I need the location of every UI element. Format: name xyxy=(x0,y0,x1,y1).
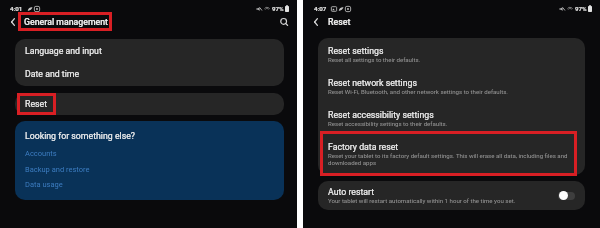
staticText: Reset xyxy=(25,99,48,109)
staticText: Auto restart xyxy=(328,187,375,197)
button[interactable] xyxy=(318,181,585,210)
button[interactable] xyxy=(318,102,585,134)
staticText: Language and input xyxy=(25,46,102,56)
staticText: Reset xyxy=(328,17,351,27)
staticText: Reset your tablet to its factory default… xyxy=(328,152,568,166)
button[interactable] xyxy=(25,165,90,174)
button[interactable] xyxy=(15,62,284,85)
button[interactable] xyxy=(15,93,284,115)
staticText: General management xyxy=(24,17,109,27)
staticText: 4:01 xyxy=(10,5,23,12)
button[interactable] xyxy=(318,70,585,102)
button[interactable]: Navigate up xyxy=(6,15,20,29)
button[interactable]: Navigate up xyxy=(309,15,323,29)
staticText: Accounts xyxy=(25,149,57,158)
staticText: 97% xyxy=(272,5,284,12)
staticText: Reset Wi-Fi, Bluetooth, and other networ… xyxy=(328,88,508,95)
button[interactable] xyxy=(318,38,585,70)
staticText: 4:07 xyxy=(314,5,327,12)
button[interactable] xyxy=(318,135,585,175)
button[interactable] xyxy=(25,181,64,190)
button[interactable] xyxy=(15,39,284,62)
staticText: Your tablet will restart automatically w… xyxy=(328,197,516,204)
staticText: Reset settings xyxy=(328,46,384,56)
staticText: Date and time xyxy=(25,69,80,79)
staticText: Backup and restore xyxy=(25,165,90,174)
staticText: Reset all settings to their defaults. xyxy=(328,56,421,63)
button[interactable]: Auto restart, off xyxy=(558,192,575,200)
staticText: Data usage xyxy=(25,180,63,189)
staticText: Reset accessibility settings xyxy=(328,110,434,120)
button[interactable]: Search xyxy=(278,16,290,28)
button[interactable] xyxy=(25,150,58,159)
staticText: Reset accessibility settings to their de… xyxy=(328,120,448,127)
staticText: 97% xyxy=(575,5,587,12)
staticText: Reset network settings xyxy=(328,78,417,88)
staticText: Looking for something else? xyxy=(25,131,135,141)
staticText: Factory data reset xyxy=(328,142,399,152)
